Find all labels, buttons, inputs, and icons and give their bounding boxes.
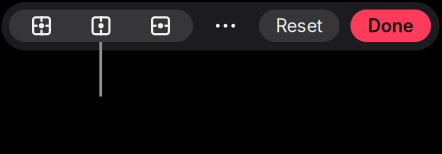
button[interactable]: More options — [204, 9, 246, 42]
staticText: Reset — [276, 15, 323, 37]
button[interactable]: Align horizontally — [71, 9, 131, 42]
staticText: Done — [368, 15, 414, 37]
button[interactable]: Align vertically — [131, 9, 190, 42]
button[interactable]: Done — [350, 9, 431, 42]
button[interactable]: Align to centre — [12, 9, 71, 42]
button[interactable]: Reset — [259, 9, 339, 42]
